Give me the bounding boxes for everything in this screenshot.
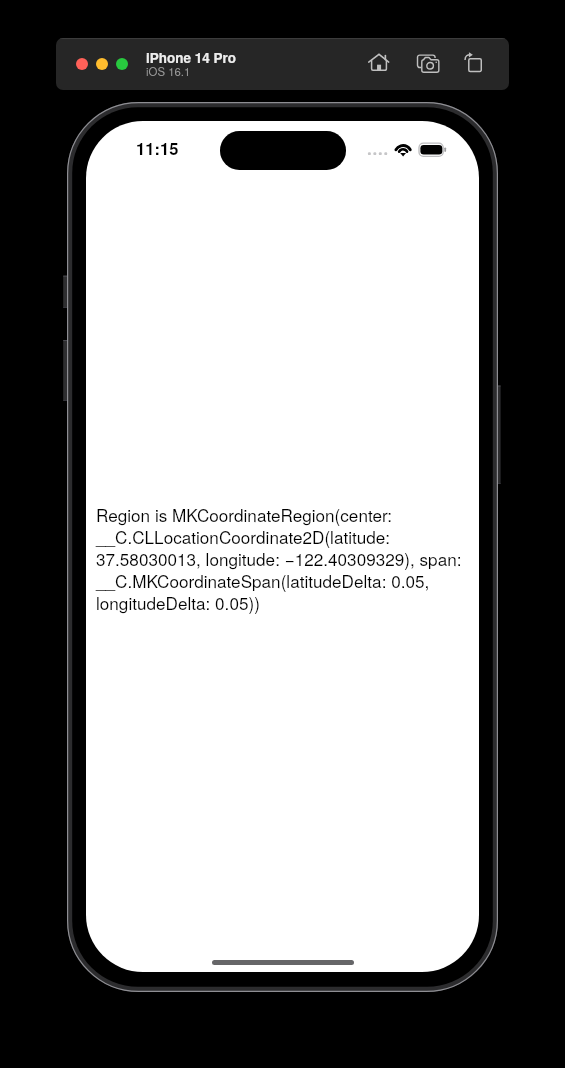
button[interactable]: Home (366, 50, 392, 76)
button[interactable]: Rotate (461, 50, 487, 76)
staticText: iOS 16.1 (146, 63, 191, 79)
button[interactable] (116, 58, 128, 70)
staticText: Region is MKCoordinateRegion(center: __C… (96, 502, 472, 615)
button[interactable]: Screenshot (414, 50, 440, 76)
staticText: iPhone 14 Pro (146, 48, 237, 67)
button[interactable] (96, 58, 108, 70)
button[interactable] (76, 58, 88, 70)
staticText: 11:15 (136, 136, 179, 160)
